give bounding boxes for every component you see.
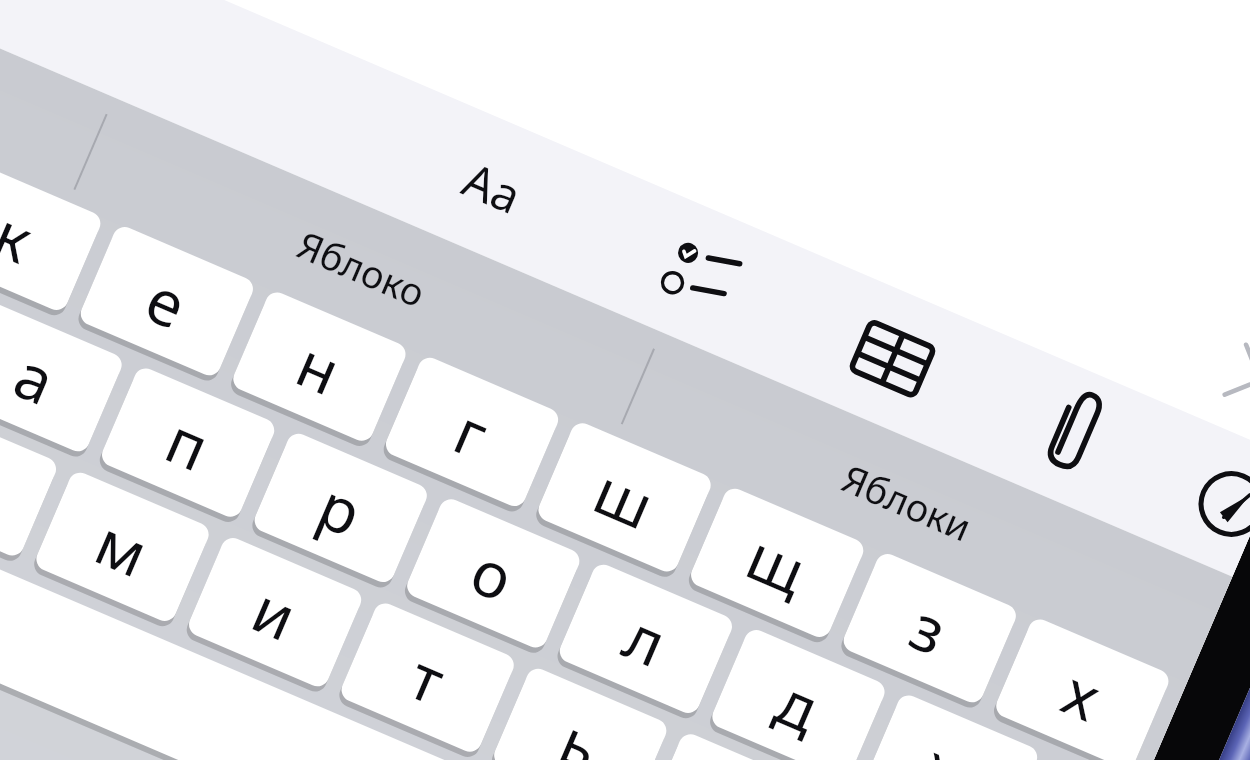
- button[interactable]: Text formatting: [0, 0, 72, 72]
- button[interactable]: Phone with Russian keyboard and formatti…: [0, 0, 1250, 760]
- button[interactable]: Attach file: [0, 0, 72, 72]
- button[interactable]: Close: [0, 0, 72, 72]
- button[interactable]: Checklist: [0, 0, 72, 72]
- button[interactable]: Insert table: [0, 0, 72, 72]
- button[interactable]: Markup: [0, 0, 72, 72]
